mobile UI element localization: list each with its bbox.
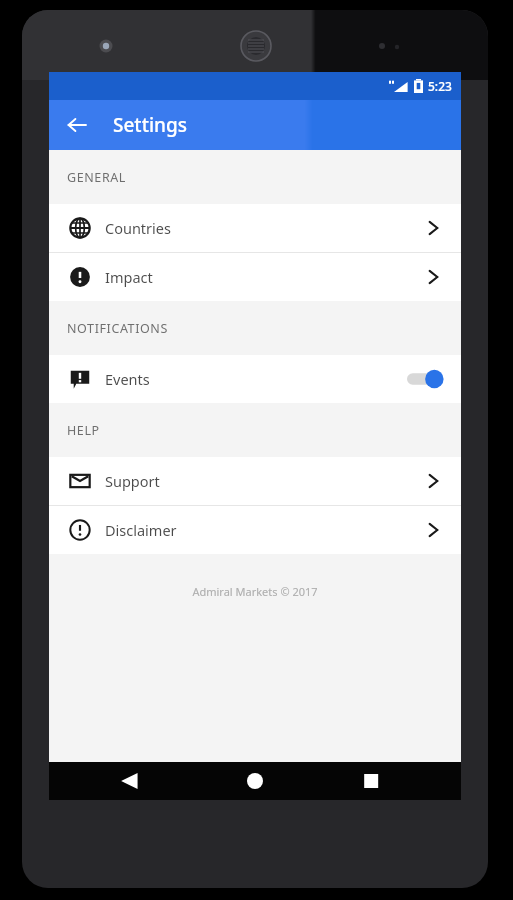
staticText: Support — [105, 471, 160, 491]
staticText: Admiral Markets © 2017 — [49, 584, 461, 599]
staticText: HELP — [67, 422, 100, 439]
staticText: NOTIFICATIONS — [67, 320, 168, 337]
button[interactable]: Support — [49, 457, 461, 505]
button[interactable]: Back — [57, 105, 97, 145]
staticText: Countries — [105, 218, 171, 238]
button[interactable]: Impact — [49, 253, 461, 301]
staticText: Settings — [113, 112, 187, 138]
button[interactable]: Disclaimer — [49, 506, 461, 554]
staticText: Disclaimer — [105, 520, 177, 540]
button[interactable]: Countries — [49, 204, 461, 252]
staticText: Impact — [105, 267, 153, 287]
button[interactable]: Events — [49, 355, 461, 403]
staticText: 5:23 — [428, 78, 452, 94]
staticText: GENERAL — [67, 169, 127, 186]
staticText: Events — [105, 369, 150, 389]
